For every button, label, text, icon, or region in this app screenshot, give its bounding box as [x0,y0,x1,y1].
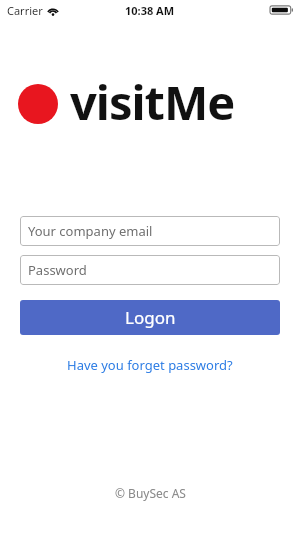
button[interactable]: Have you forget password? [0,353,300,377]
other: Wi-Fi signal [47,6,59,16]
staticText: Your company email [28,222,153,240]
button[interactable]: Your company email [20,216,280,246]
staticText: © BuySec AS [115,485,186,501]
other: Battery nearly full [270,5,293,15]
staticText: Carrier [7,3,43,18]
staticText: Have you forget password? [67,356,233,374]
button[interactable]: Logon [20,300,280,335]
staticText: 10:38 AM [125,3,175,18]
staticText: Password [28,261,87,279]
staticText: visitMe [70,70,235,134]
button[interactable]: Password [20,255,280,285]
staticText: Logon [125,306,176,329]
